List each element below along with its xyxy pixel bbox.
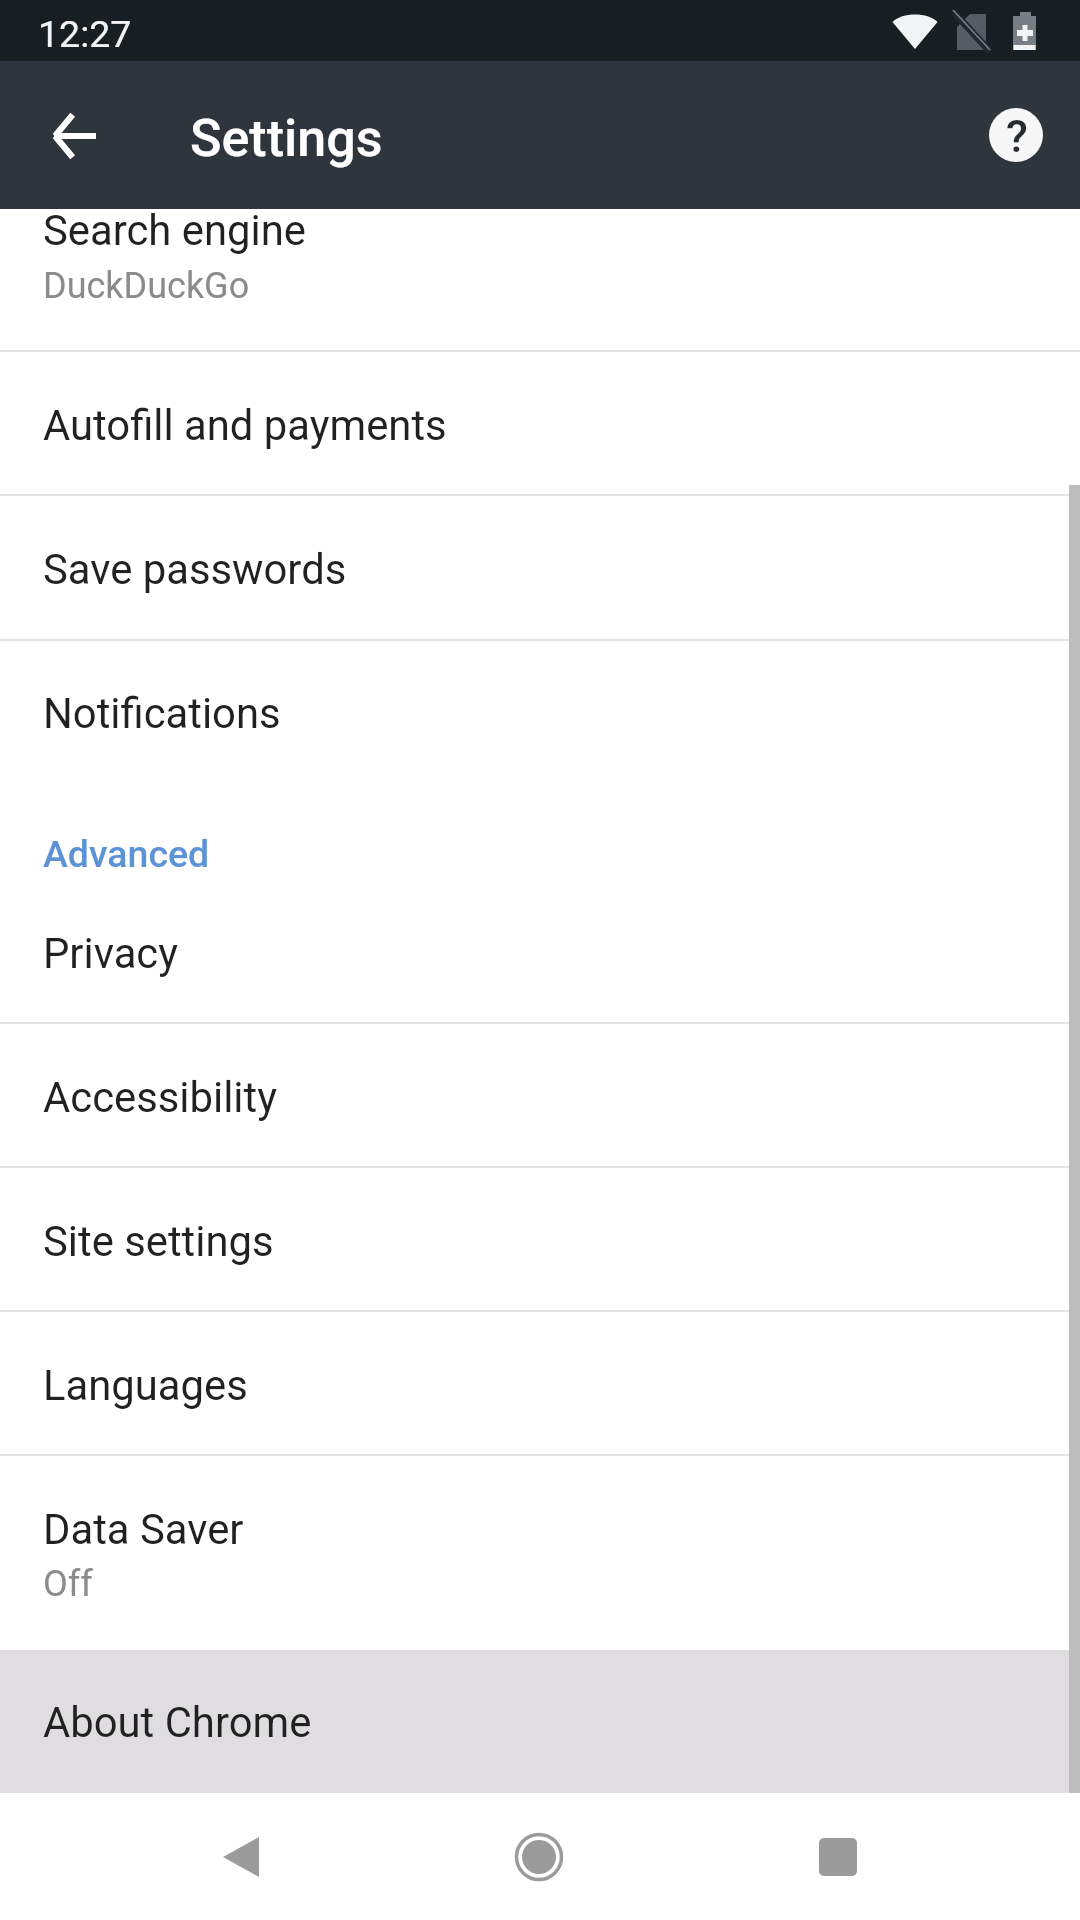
button[interactable]: Site settings — [0, 1167, 1080, 1311]
staticText: About Chrome — [43, 1698, 312, 1747]
staticText: DuckDuckGo — [43, 265, 250, 307]
button[interactable]: Recent apps — [778, 1793, 898, 1920]
button[interactable]: Save passwords — [0, 495, 1080, 640]
staticText: Site settings — [43, 1217, 274, 1266]
staticText: Advanced — [43, 832, 210, 876]
button[interactable]: Back — [181, 1793, 301, 1920]
staticText: Autofill and payments — [43, 401, 447, 450]
button[interactable]: Data Saver — [0, 1455, 1080, 1650]
staticText: ? — [1006, 110, 1028, 163]
staticText: Privacy — [43, 929, 179, 978]
staticText: 12:27 — [38, 12, 132, 56]
button[interactable]: Languages — [0, 1311, 1080, 1455]
button[interactable]: Accessibility — [0, 1023, 1080, 1167]
button[interactable]: Autofill and payments — [0, 351, 1080, 495]
button[interactable]: Home — [479, 1793, 599, 1920]
staticText: Notifications — [43, 689, 281, 738]
button[interactable]: About Chrome — [0, 1650, 1080, 1793]
staticText: Data Saver — [43, 1505, 244, 1554]
staticText: Search engine — [43, 206, 306, 255]
staticText: Settings — [190, 108, 383, 169]
button[interactable]: Navigate up — [26, 88, 122, 184]
button[interactable]: Notifications — [0, 640, 1080, 785]
button[interactable]: Search engine — [0, 209, 1080, 351]
staticText: Accessibility — [43, 1073, 277, 1122]
staticText: Save passwords — [43, 545, 347, 594]
button[interactable]: Privacy — [0, 885, 1080, 1023]
staticText: Languages — [43, 1361, 248, 1410]
staticText: Off — [43, 1563, 93, 1605]
button[interactable]: Help and feedback — [968, 87, 1064, 183]
